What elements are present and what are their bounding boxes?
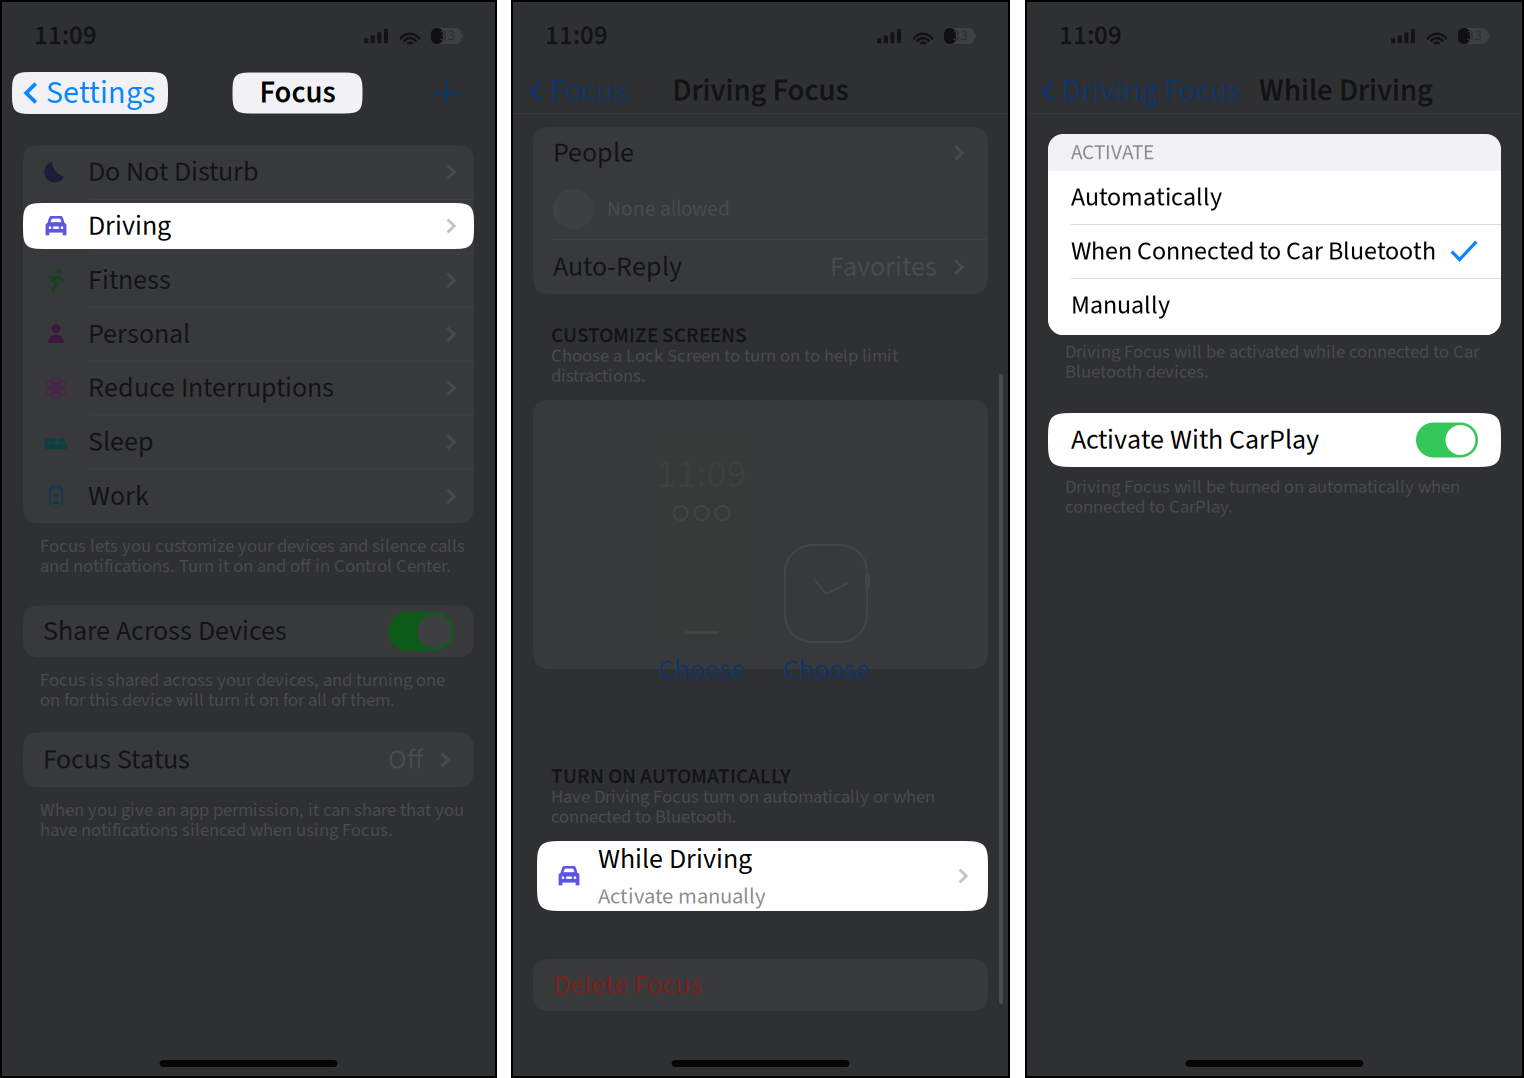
button[interactable]: Driving [23, 203, 474, 249]
button[interactable]: Personal [23, 308, 474, 361]
staticText: Driving Focus will be activated while co… [1065, 339, 1479, 365]
staticText: Off [388, 740, 423, 780]
staticText: 11:09 [545, 17, 608, 55]
staticText: Driving [88, 206, 171, 246]
staticText: Focus [550, 68, 627, 114]
staticText: distractions. [551, 363, 646, 389]
button[interactable]: Delete Focus [513, 959, 1008, 1011]
staticText: Manually [1071, 287, 1170, 324]
staticText: Activate manually [598, 880, 766, 913]
staticText: Delete Focus [553, 965, 702, 1005]
button[interactable]: Work [23, 469, 474, 523]
staticText: Share Across Devices [43, 611, 287, 651]
staticText: and notifications. Turn it on and off in… [40, 553, 451, 580]
staticText: While Driving [598, 839, 752, 879]
staticText: When Connected to Car Bluetooth [1071, 233, 1436, 270]
staticText: Activate With CarPlay [1071, 420, 1319, 460]
staticText: Driving [88, 206, 171, 246]
button[interactable]: While Driving [513, 841, 1008, 911]
staticText: CUSTOMIZE SCREENS [551, 320, 747, 351]
staticText: While Driving [1259, 69, 1433, 113]
staticText: Driving Focus [672, 69, 848, 113]
staticText: Automatically [1071, 179, 1222, 216]
staticText: on for this device will turn it on for a… [40, 687, 395, 714]
staticText: Choose [782, 650, 869, 690]
staticText: Do Not Disturb [88, 152, 258, 192]
staticText: 11:09 [1059, 17, 1122, 55]
staticText: Fitness [88, 260, 171, 300]
staticText: Choose [658, 650, 745, 690]
staticText: Focus is shared across your devices, and… [40, 667, 445, 694]
button[interactable]: People [533, 127, 988, 239]
button[interactable]: Reduce Interruptions [23, 362, 474, 414]
staticText: connected to Bluetooth. [551, 804, 737, 830]
staticText: People [553, 133, 634, 173]
button[interactable]: Settings [12, 72, 168, 114]
button[interactable]: Auto-Reply [533, 240, 988, 294]
staticText: ACTIVATE [1071, 137, 1154, 168]
staticText: 33 [952, 26, 968, 46]
staticText: Reduce Interruptions [88, 368, 334, 408]
staticText: connected to CarPlay. [1065, 494, 1233, 520]
staticText: Sleep [88, 422, 154, 462]
staticText: None allowed [607, 194, 730, 224]
staticText: Focus Status [43, 740, 190, 780]
button[interactable]: Fitness [23, 254, 474, 307]
staticText: Favorites [830, 247, 937, 287]
staticText: Bluetooth devices. [1065, 359, 1209, 385]
staticText: Settings [46, 70, 155, 116]
button[interactable]: Do Not Disturb [23, 145, 474, 199]
button[interactable]: Choose [782, 650, 870, 690]
staticText: Personal [88, 314, 190, 354]
staticText: Focus lets you customize your devices an… [40, 533, 465, 560]
button[interactable]: Sleep [23, 415, 474, 468]
button[interactable]: Automatically [1048, 171, 1501, 224]
button[interactable]: When Connected to Car Bluetooth [1048, 225, 1501, 278]
staticText: 33 [439, 26, 455, 46]
staticText: have notifications silenced when using F… [40, 817, 393, 844]
staticText: 33 [1466, 26, 1482, 46]
staticText: Driving Focus will be turned on automati… [1065, 474, 1460, 500]
staticText: When you give an app permission, it can … [40, 797, 464, 824]
button[interactable]: Manually [1048, 279, 1501, 332]
button[interactable]: Focus Status [2, 732, 495, 787]
button[interactable]: Focus [513, 69, 637, 113]
button[interactable]: Driving Focus [1027, 69, 1247, 113]
button[interactable]: Choose [651, 650, 752, 690]
staticText: TURN ON AUTOMATICALLY [551, 761, 791, 792]
staticText: Driving Focus [1062, 68, 1241, 114]
button[interactable]: Driving [23, 200, 474, 253]
staticText: Choose a Lock Screen to turn on to help … [551, 343, 898, 369]
staticText: 11:09 [34, 17, 97, 55]
staticText: Auto-Reply [553, 247, 682, 287]
staticText: Focus [259, 71, 335, 115]
staticText: Work [88, 476, 149, 516]
button[interactable]: Add Focus [427, 72, 467, 114]
staticText: Have Driving Focus turn on automatically… [551, 784, 935, 810]
